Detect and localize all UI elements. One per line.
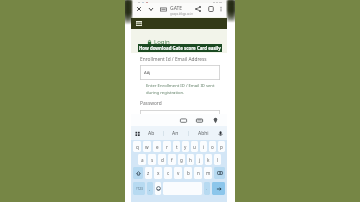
button[interactable]: f [168,154,176,165]
button[interactable]: x [154,167,162,179]
staticText: l [217,157,219,163]
staticText: m [206,170,211,176]
button[interactable]: Site information [160,6,167,13]
staticText: , [149,186,151,191]
staticText: ?123 [136,187,143,191]
button[interactable]: d [158,154,166,165]
button[interactable]: GIF [180,117,187,124]
button[interactable]: m [204,167,212,179]
button[interactable]: i [200,141,207,152]
button[interactable]: Expand toolbar [135,131,140,136]
staticText: n [197,170,200,176]
button[interactable]: y [182,141,189,152]
staticText: Ab [148,130,155,137]
button[interactable]: Voice input [218,131,223,136]
button[interactable]: j [196,154,203,165]
staticText: k [207,157,210,163]
button[interactable]: t [173,141,180,152]
staticText: y [184,144,187,150]
button[interactable]: Share [194,5,202,13]
staticText: r [166,144,168,150]
button[interactable]: Shift [133,167,143,179]
staticText: w [145,144,149,150]
staticText: How download Gate score Card easily [139,45,221,51]
button[interactable]: b [184,167,192,179]
staticText: p [220,144,223,150]
button[interactable]: o [209,141,216,152]
staticText: g [180,157,183,163]
button[interactable]: l [214,154,221,165]
button[interactable]: How download Gate score Card easily [138,44,222,52]
staticText: b [187,170,190,176]
staticText: v [177,170,180,176]
button[interactable]: q [133,141,141,152]
button[interactable]: More options [217,5,225,13]
button[interactable]: Expand [147,5,155,13]
staticText: Login [154,38,170,46]
button[interactable]: Backspace [214,167,225,179]
staticText: Abhi [198,130,209,137]
staticText: . [206,186,208,191]
button[interactable]: ?123 [133,182,145,195]
button[interactable]: n [194,167,202,179]
button[interactable]: p [218,141,225,152]
button[interactable]: AAj [140,65,220,80]
staticText: t [176,144,178,150]
button[interactable]: v [174,167,182,179]
button[interactable]: Location [212,117,219,124]
staticText: i [203,144,205,150]
button[interactable]: k [205,154,212,165]
button[interactable]: e [153,141,161,152]
button[interactable]: a [138,154,146,165]
staticText: Password [140,100,162,107]
staticText: f [171,157,173,163]
button[interactable]: Menu [136,21,142,26]
button[interactable]: . [204,182,210,195]
staticText: a [141,157,144,163]
staticText: Enter Enrollment ID / Email ID sent duri… [146,83,215,95]
staticText: goaps.iitkgp.ac.in [170,12,194,16]
button[interactable]: u [191,141,198,152]
button[interactable]: z [145,167,152,179]
staticText: o [211,144,214,150]
button[interactable]: , [147,182,153,195]
button[interactable]: Enter [212,182,225,195]
staticText: An [172,130,179,137]
staticText: c [167,170,170,176]
button[interactable]: Emoji [155,182,161,195]
staticText: s [151,157,154,163]
staticText: x [157,170,160,176]
staticText: AAj [144,70,151,76]
staticText: d [161,157,164,163]
staticText: Enrollment Id / Email Address [140,56,207,63]
staticText: GATE [170,5,183,12]
button[interactable]: Clipboard [196,117,203,124]
staticText: z [147,170,150,176]
staticText: j [199,157,201,163]
button[interactable]: Close [135,5,143,13]
staticText: e [156,144,159,150]
button[interactable]: Bookmark [207,5,215,13]
staticText: h [189,157,192,163]
button[interactable]: w [143,141,151,152]
staticText: u [193,144,196,150]
button[interactable]: g [178,154,185,165]
button[interactable]: c [164,167,172,179]
staticText: q [136,144,139,150]
button[interactable]: r [163,141,171,152]
button[interactable]: h [187,154,194,165]
button[interactable]: s [148,154,156,165]
